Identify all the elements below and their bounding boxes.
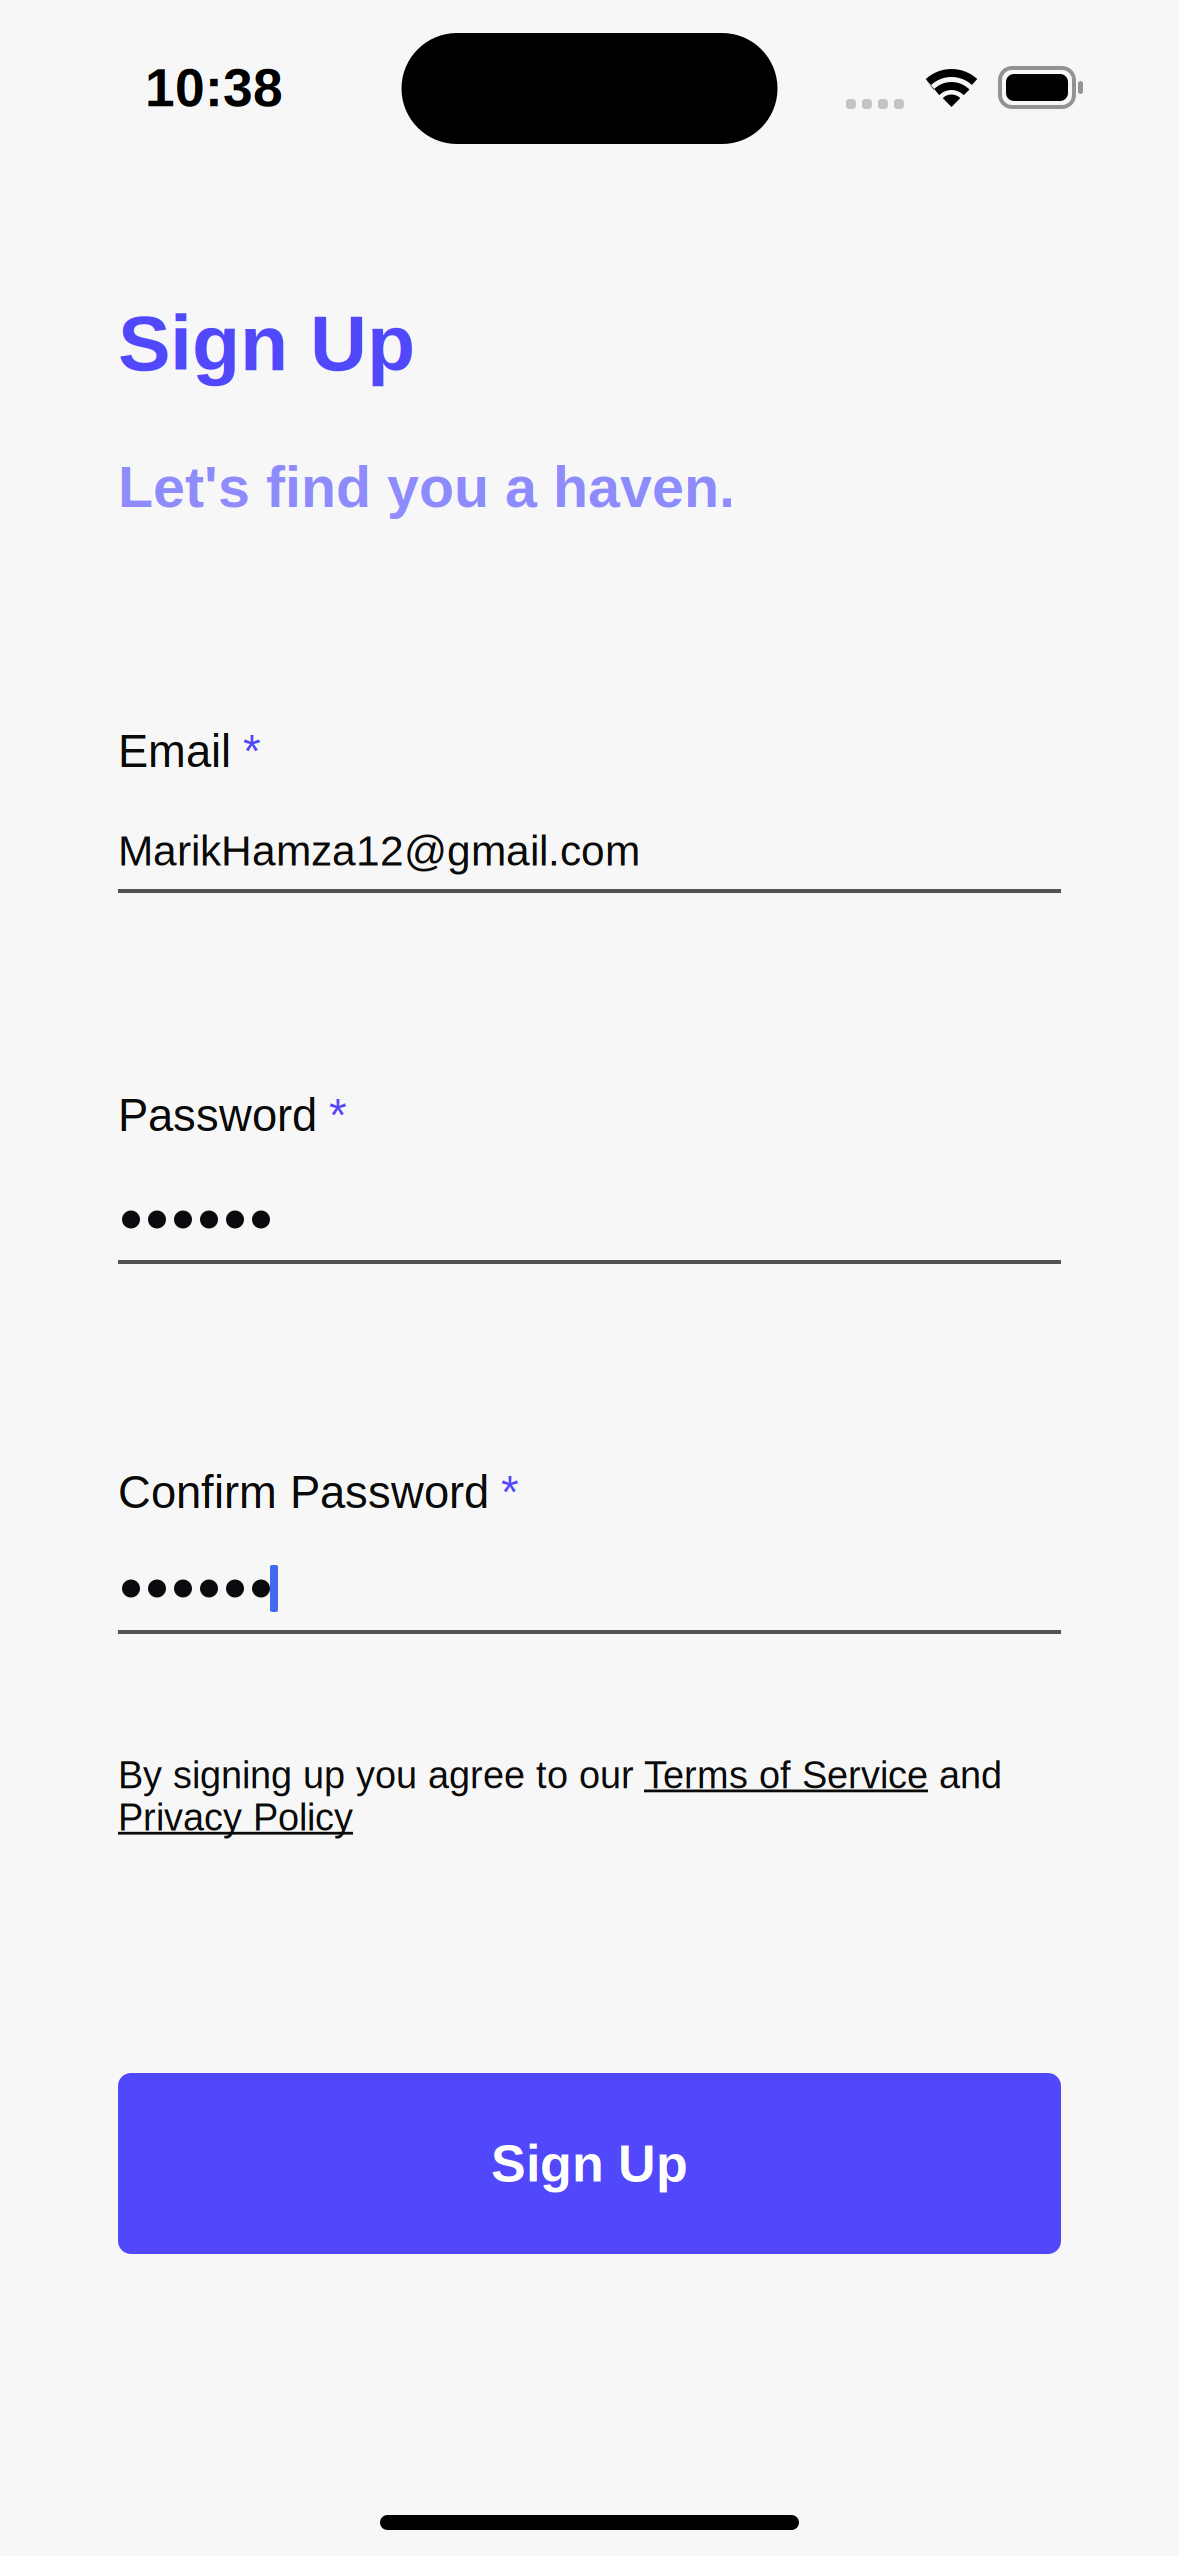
button[interactable]: Email (118, 726, 1061, 897)
staticText: Let's find you a haven. (118, 455, 735, 519)
button[interactable]: Confirm Password (118, 1467, 1061, 1638)
staticText: * (501, 1467, 519, 1518)
staticText: By signing up you agree to our Terms of … (118, 1754, 1002, 1839)
button[interactable]: Password (118, 1090, 1061, 1268)
staticText: Email (118, 726, 231, 777)
staticText: * (243, 726, 261, 777)
staticText: Password (118, 1090, 317, 1141)
staticText: Sign Up (118, 299, 415, 387)
staticText: Sign Up (491, 2134, 688, 2193)
staticText: * (329, 1090, 347, 1141)
staticText: 10:38 (145, 58, 283, 118)
button[interactable]: By signing up you agree to our Terms of … (118, 1754, 1061, 1839)
staticText: MarikHamza12@gmail.com (118, 827, 640, 874)
button[interactable]: Sign Up (118, 2073, 1061, 2254)
staticText: Confirm Password (118, 1467, 489, 1518)
